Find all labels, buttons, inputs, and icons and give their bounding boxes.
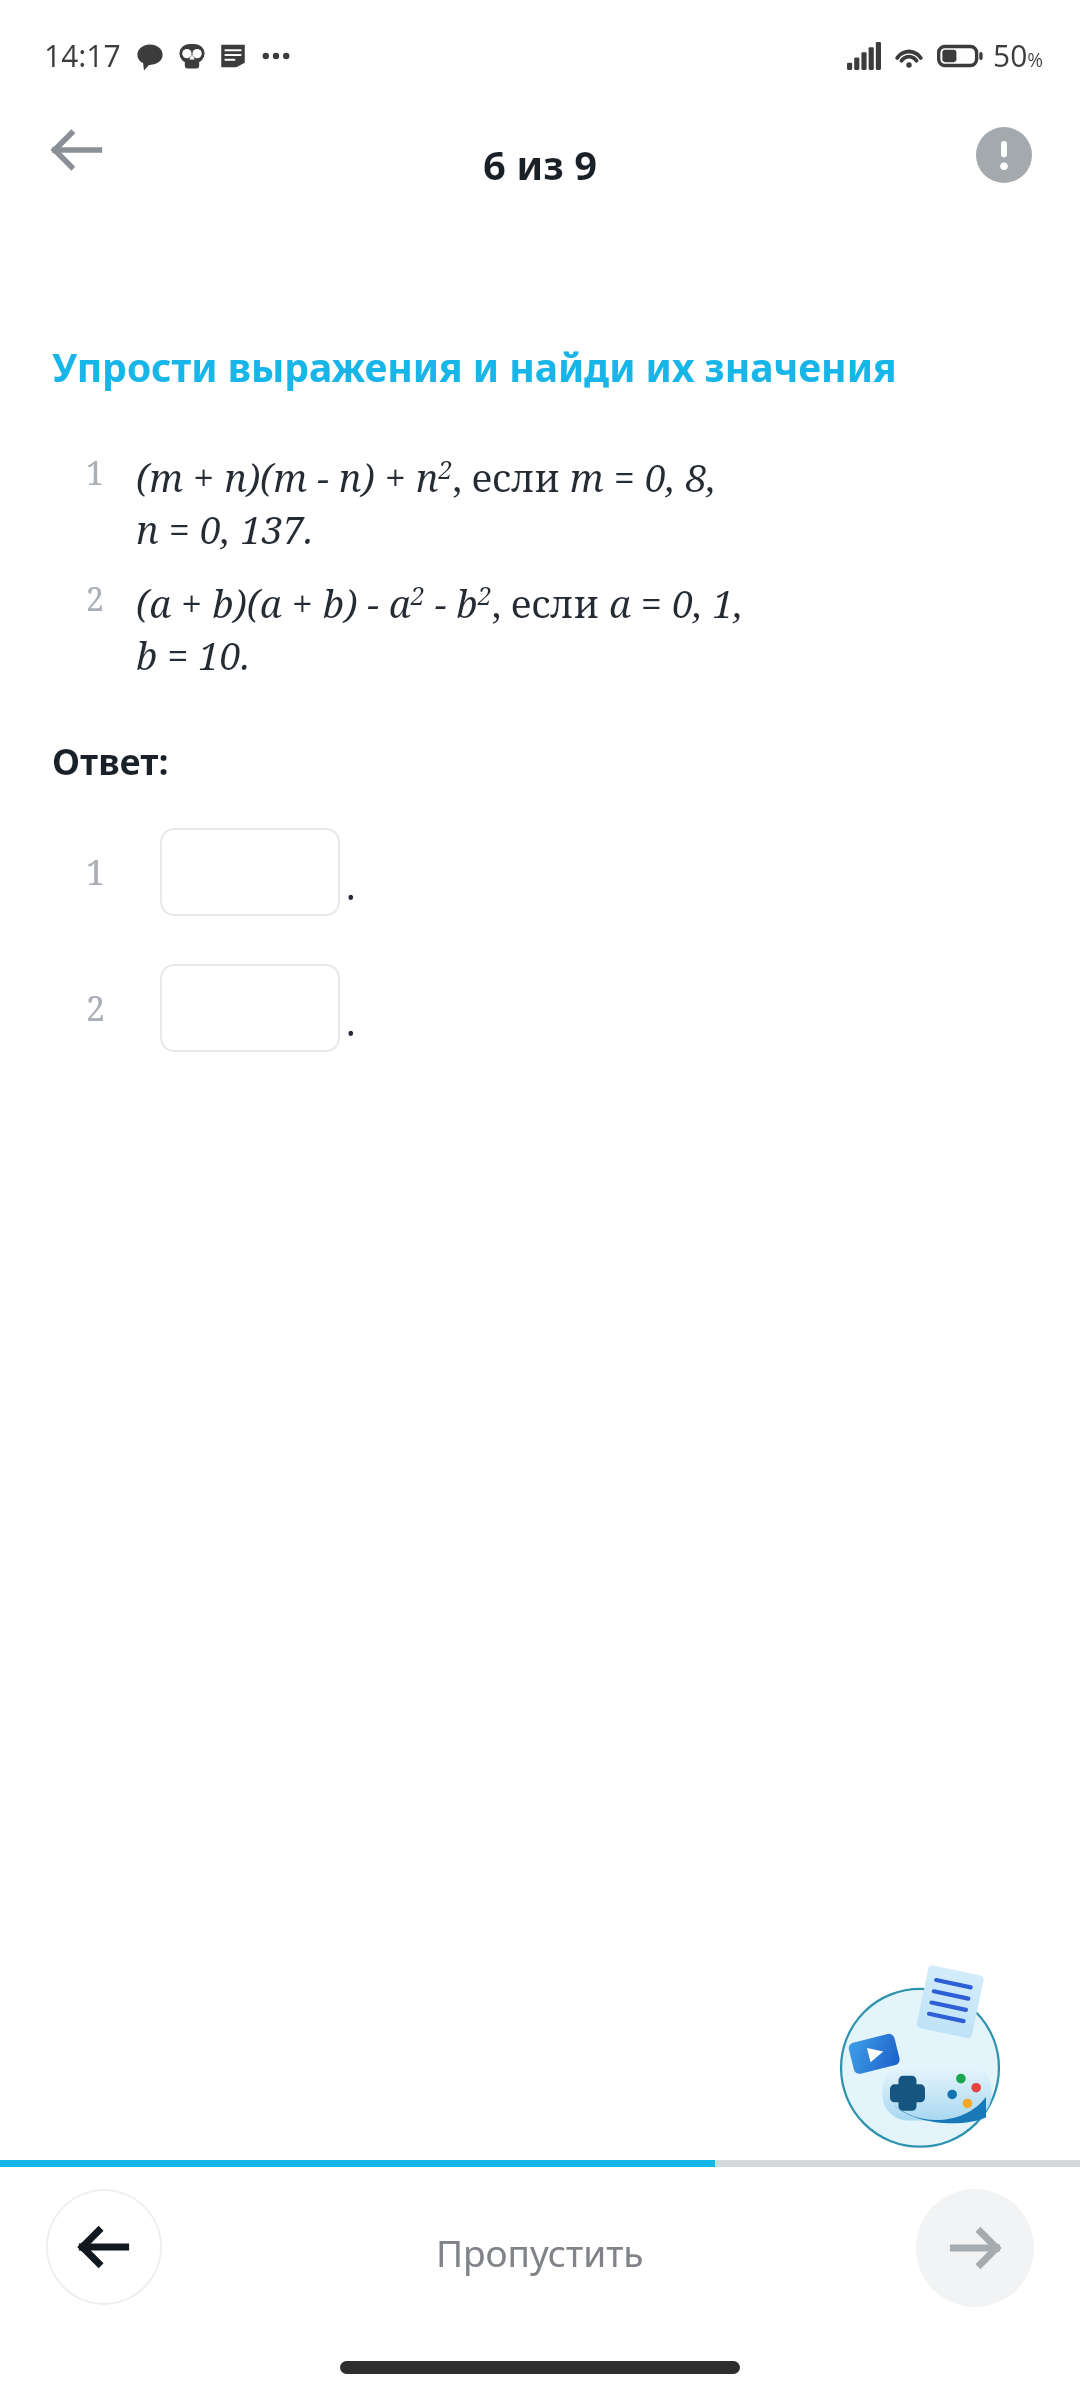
button[interactable]: Пропустить [416,2219,664,2285]
staticText: Упрости выражения и найди их значения [52,340,897,393]
staticText: . [346,995,356,1047]
button[interactable]: Информация [954,105,1054,205]
staticText: 2 [86,985,106,1031]
staticText: b = 10. [136,629,251,681]
button[interactable]: Следующий [916,2189,1034,2307]
staticText: (m + n)(m − n) + n2, если m = 0, 8, [136,451,717,503]
button[interactable]: Поле ответа 2 [160,964,340,1052]
staticText: Пропустить [436,2227,644,2277]
staticText: 6 из 9 [483,137,598,191]
button[interactable]: Игры и задания [826,1970,1014,2158]
staticText: 50% [993,35,1044,76]
button[interactable]: Назад [22,95,132,205]
button[interactable]: Предыдущий [46,2189,162,2305]
staticText: (a + b)(a + b) − a2 − b2, если a = 0, 1, [136,577,744,629]
staticText: 1 [86,849,106,895]
staticText: Ответ: [52,737,169,786]
staticText: 2 [86,577,104,621]
button[interactable]: Поле ответа 1 [160,828,340,916]
staticText: . [346,859,356,911]
staticText: n = 0, 137. [136,503,314,555]
staticText: 14:17 [44,35,121,76]
staticText: 1 [86,451,104,495]
